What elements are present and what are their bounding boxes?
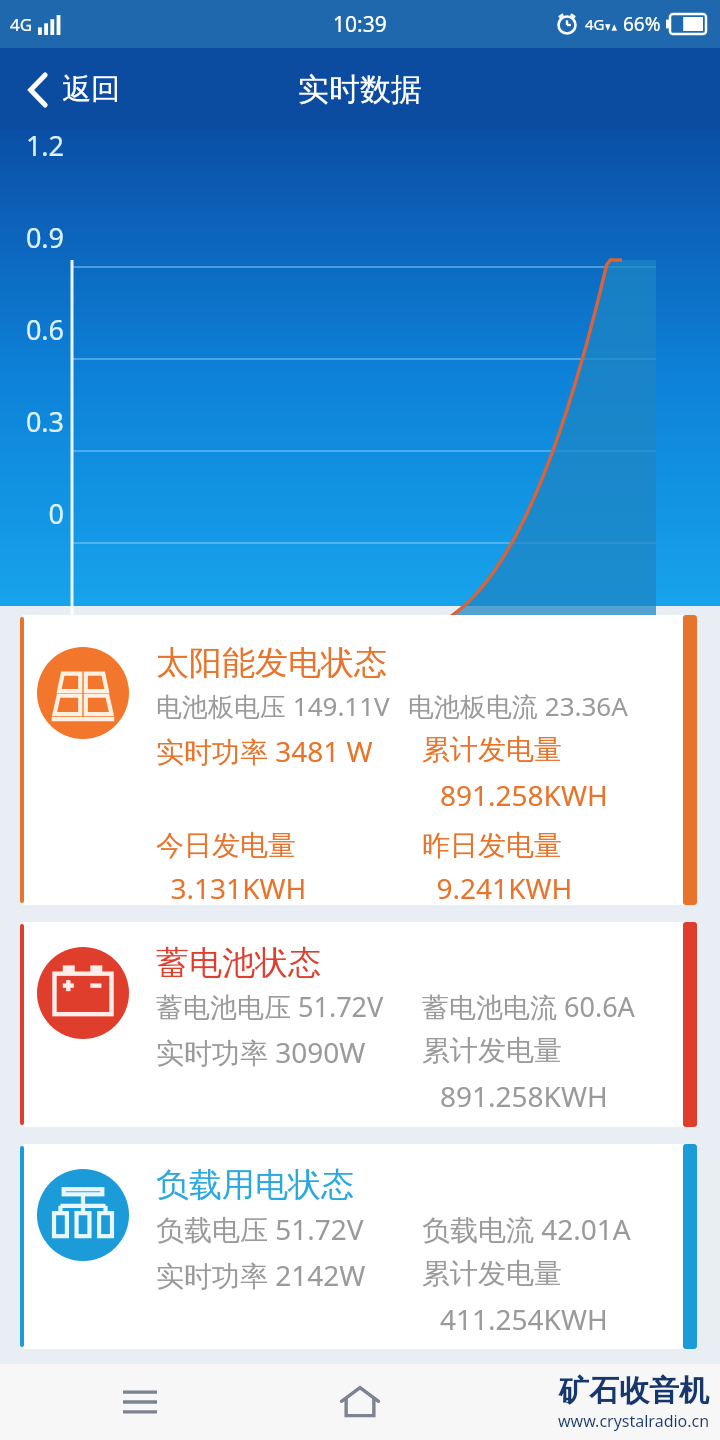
staticText: 02: [178, 649, 222, 683]
staticText: 昨日发电量: [422, 828, 562, 863]
staticText: 蓄电池电压 51.72V: [156, 988, 384, 1025]
staticText: 累计发电量: [422, 732, 562, 767]
staticText: 累计发电量: [422, 1256, 562, 1291]
staticText: 负载电流 42.01A: [422, 1210, 631, 1248]
staticText: 04: [306, 649, 350, 683]
staticText: 实时功率 3090W: [156, 1033, 366, 1071]
button[interactable]: 返回: [0, 63, 136, 116]
staticText: 0: [8, 495, 64, 532]
staticText: 实时功率 2142W: [156, 1256, 366, 1294]
staticText: 9.241KWH: [422, 869, 573, 907]
staticText: 太阳能发电状态: [156, 642, 387, 684]
staticText: 03: [242, 649, 286, 683]
staticText: 负载电压 51.72V: [156, 1210, 364, 1248]
staticText: 66%: [623, 11, 661, 37]
button[interactable]: Home: [327, 1369, 393, 1435]
staticText: 4G: [585, 14, 605, 34]
staticText: 今日发电量: [156, 828, 296, 863]
staticText: 891.258KWH: [440, 1077, 608, 1115]
staticText: 蓄电池电流 60.6A: [422, 988, 635, 1025]
staticText: 实时数据: [298, 70, 422, 109]
staticText: 0.9: [8, 219, 64, 256]
staticText: 返回: [62, 71, 120, 108]
staticText: www.crystalradio.cn: [558, 1410, 710, 1432]
staticText: 实时功率 3481 W: [156, 732, 373, 770]
staticText: 1.2: [8, 127, 64, 164]
staticText: 05: [370, 649, 414, 683]
staticText: 蓄电池状态: [156, 942, 321, 984]
staticText: 891.258KWH: [440, 776, 608, 814]
staticText: 负载用电状态: [156, 1164, 354, 1206]
button[interactable]: 太阳能发电状态: [14, 615, 706, 905]
staticText: 矿石收音机: [559, 1372, 709, 1410]
button[interactable]: 负载用电状态: [14, 1144, 706, 1349]
staticText: 4G: [10, 13, 33, 36]
staticText: 00: [50, 649, 94, 683]
staticText: 电池板电压 149.11V: [156, 688, 390, 724]
staticText: 3.131KWH: [156, 869, 307, 907]
staticText: 0.3: [8, 403, 64, 440]
staticText: 电池板电流 23.36A: [408, 688, 628, 724]
button[interactable]: 蓄电池状态: [14, 922, 706, 1127]
staticText: 411.254KWH: [440, 1300, 608, 1338]
staticText: 10:39: [333, 10, 387, 39]
staticText: 0.6: [8, 311, 64, 348]
staticText: 01: [114, 649, 158, 683]
button[interactable]: Menu: [110, 1372, 170, 1432]
staticText: 累计发电量: [422, 1033, 562, 1068]
